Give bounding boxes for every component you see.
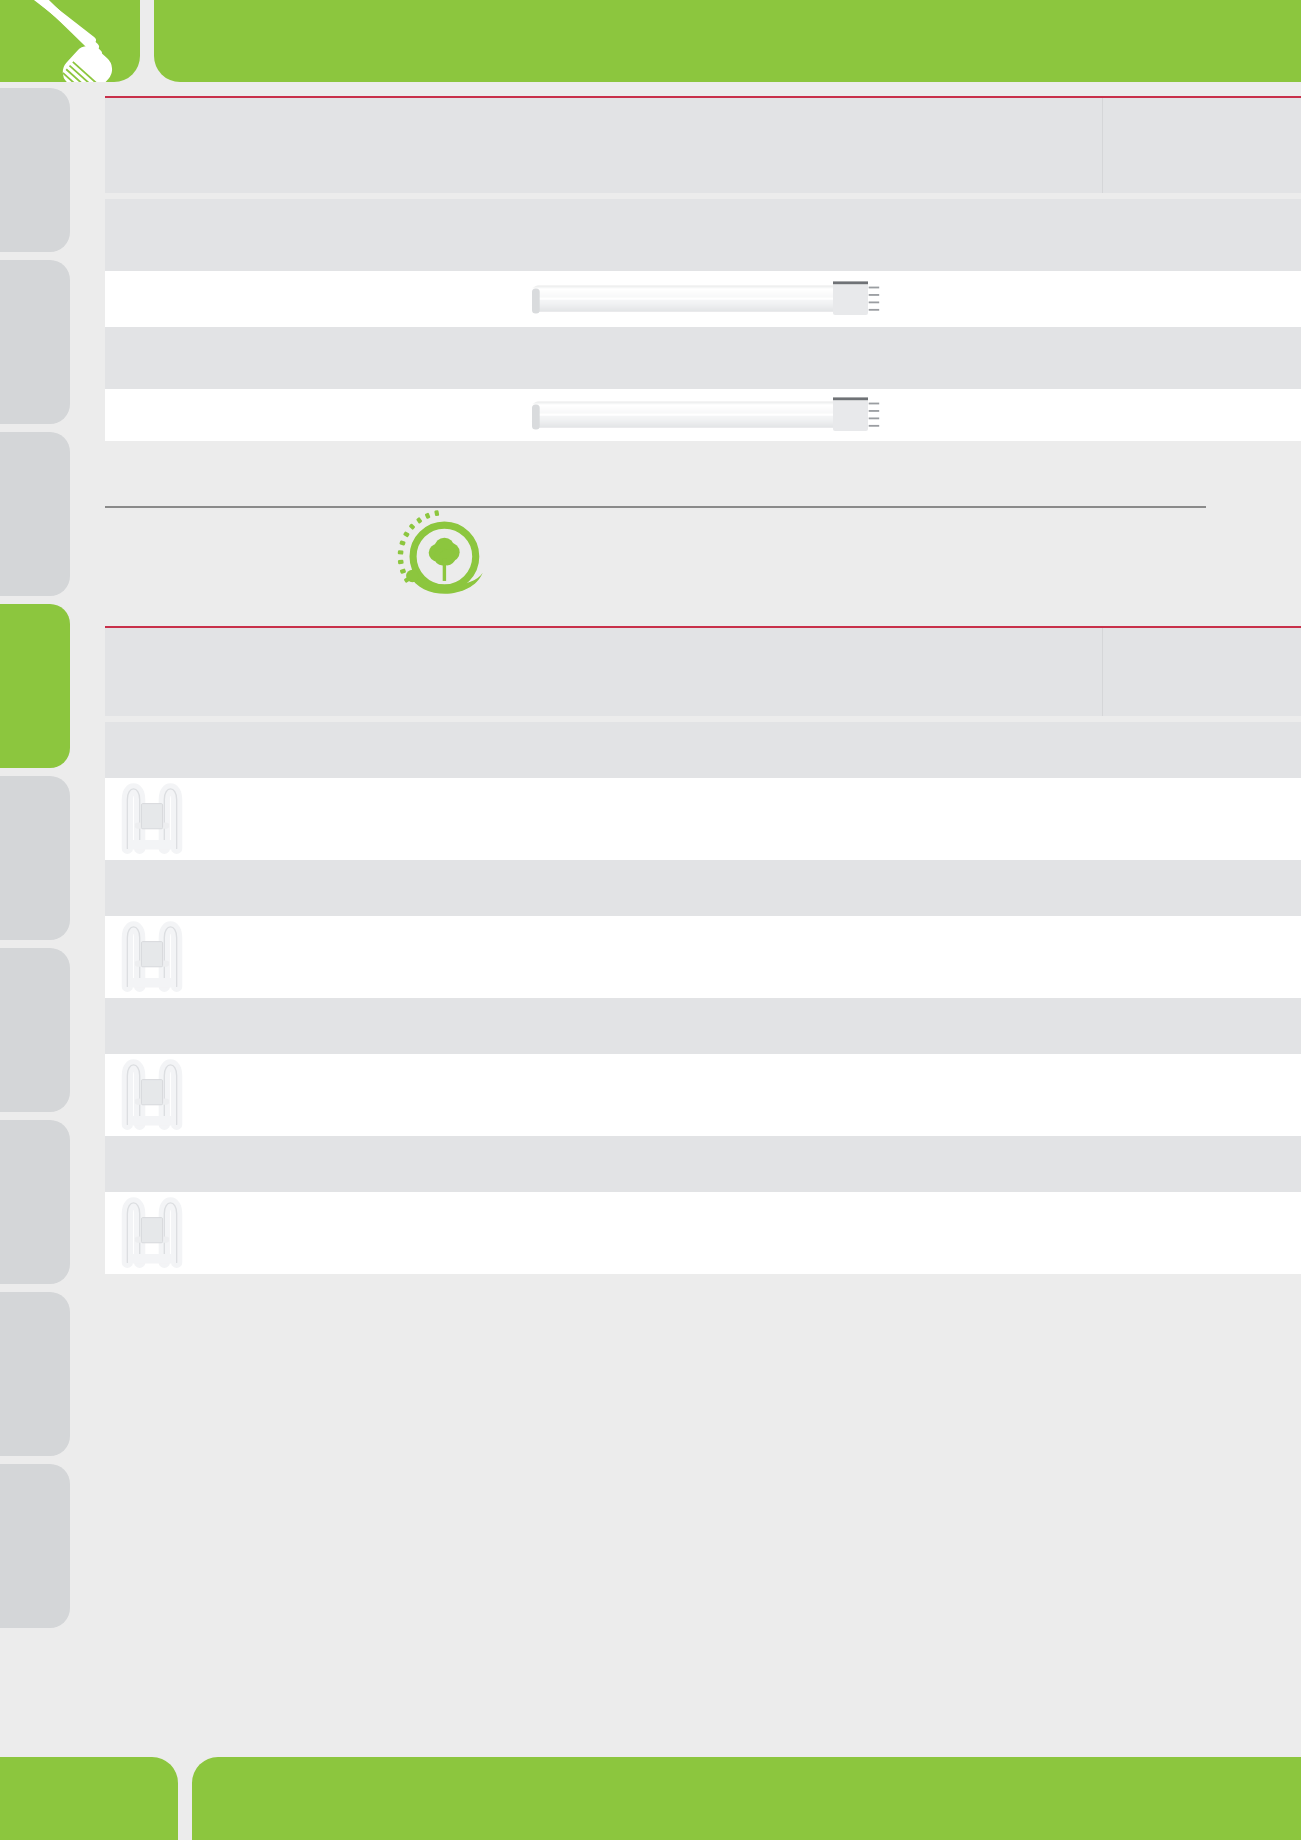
button[interactable]: Fluorescent tube lamp (105, 271, 1301, 327)
button[interactable]: 2D compact lamp (105, 778, 1301, 860)
button[interactable]: 2D compact lamp (105, 1054, 1301, 1136)
button[interactable]: Fluorescent tube lamp (105, 389, 1301, 441)
button[interactable] (192, 1757, 1301, 1840)
button[interactable]: Energy saving lamp logo (0, 0, 140, 82)
button[interactable]: Save energy (395, 516, 490, 604)
button[interactable]: 2D compact lamp (105, 916, 1301, 998)
button[interactable]: Footer left (0, 1757, 178, 1840)
button[interactable]: 2D compact lamp (105, 1192, 1301, 1274)
button[interactable]: Category tab 4 (0, 604, 70, 768)
button[interactable] (154, 0, 1301, 82)
